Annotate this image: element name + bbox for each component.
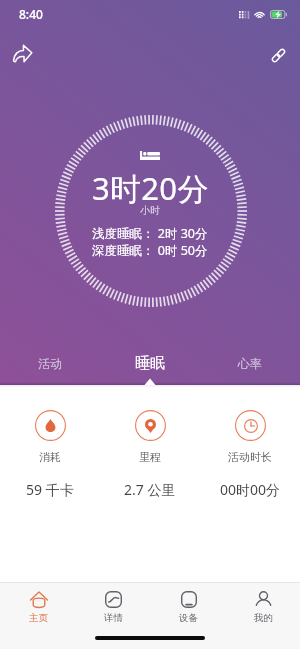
button[interactable]: Link xyxy=(262,39,294,71)
button[interactable]: 消耗 xyxy=(5,410,95,499)
staticText: 我的 xyxy=(254,612,273,624)
staticText: 59 千卡 xyxy=(26,480,74,499)
button[interactable]: 设备 xyxy=(160,590,216,624)
staticText: 睡眠 xyxy=(135,354,165,373)
button[interactable]: 详情 xyxy=(85,590,141,624)
button[interactable]: 活动时长 xyxy=(205,410,295,499)
staticText: 浅度睡眠： 2时 30分 xyxy=(92,225,208,242)
staticText: 活动时长 xyxy=(228,450,272,464)
button[interactable]: 里程 xyxy=(105,410,195,499)
staticText: 8:40 xyxy=(19,6,43,22)
staticText: 00时00分 xyxy=(220,480,281,499)
button[interactable]: 活动 xyxy=(14,345,86,381)
staticText: 2.7 公里 xyxy=(124,480,176,499)
staticText: 小时 xyxy=(140,204,160,217)
staticText: 深度睡眠： 0时 50分 xyxy=(92,242,208,259)
button[interactable]: 睡眠 xyxy=(114,345,186,381)
staticText: 主页 xyxy=(29,612,48,624)
staticText: 心率 xyxy=(238,356,262,371)
staticText: 消耗 xyxy=(39,450,61,464)
button[interactable]: 心率 xyxy=(214,345,286,381)
button[interactable]: 我的 xyxy=(235,590,291,624)
button[interactable]: 主页 xyxy=(10,590,66,624)
staticText: 3时20分 xyxy=(92,167,209,209)
staticText: 详情 xyxy=(104,612,123,624)
staticText: 设备 xyxy=(179,612,198,624)
staticText: 里程 xyxy=(139,450,161,464)
button[interactable]: Share xyxy=(5,36,39,70)
staticText: 活动 xyxy=(38,356,62,371)
